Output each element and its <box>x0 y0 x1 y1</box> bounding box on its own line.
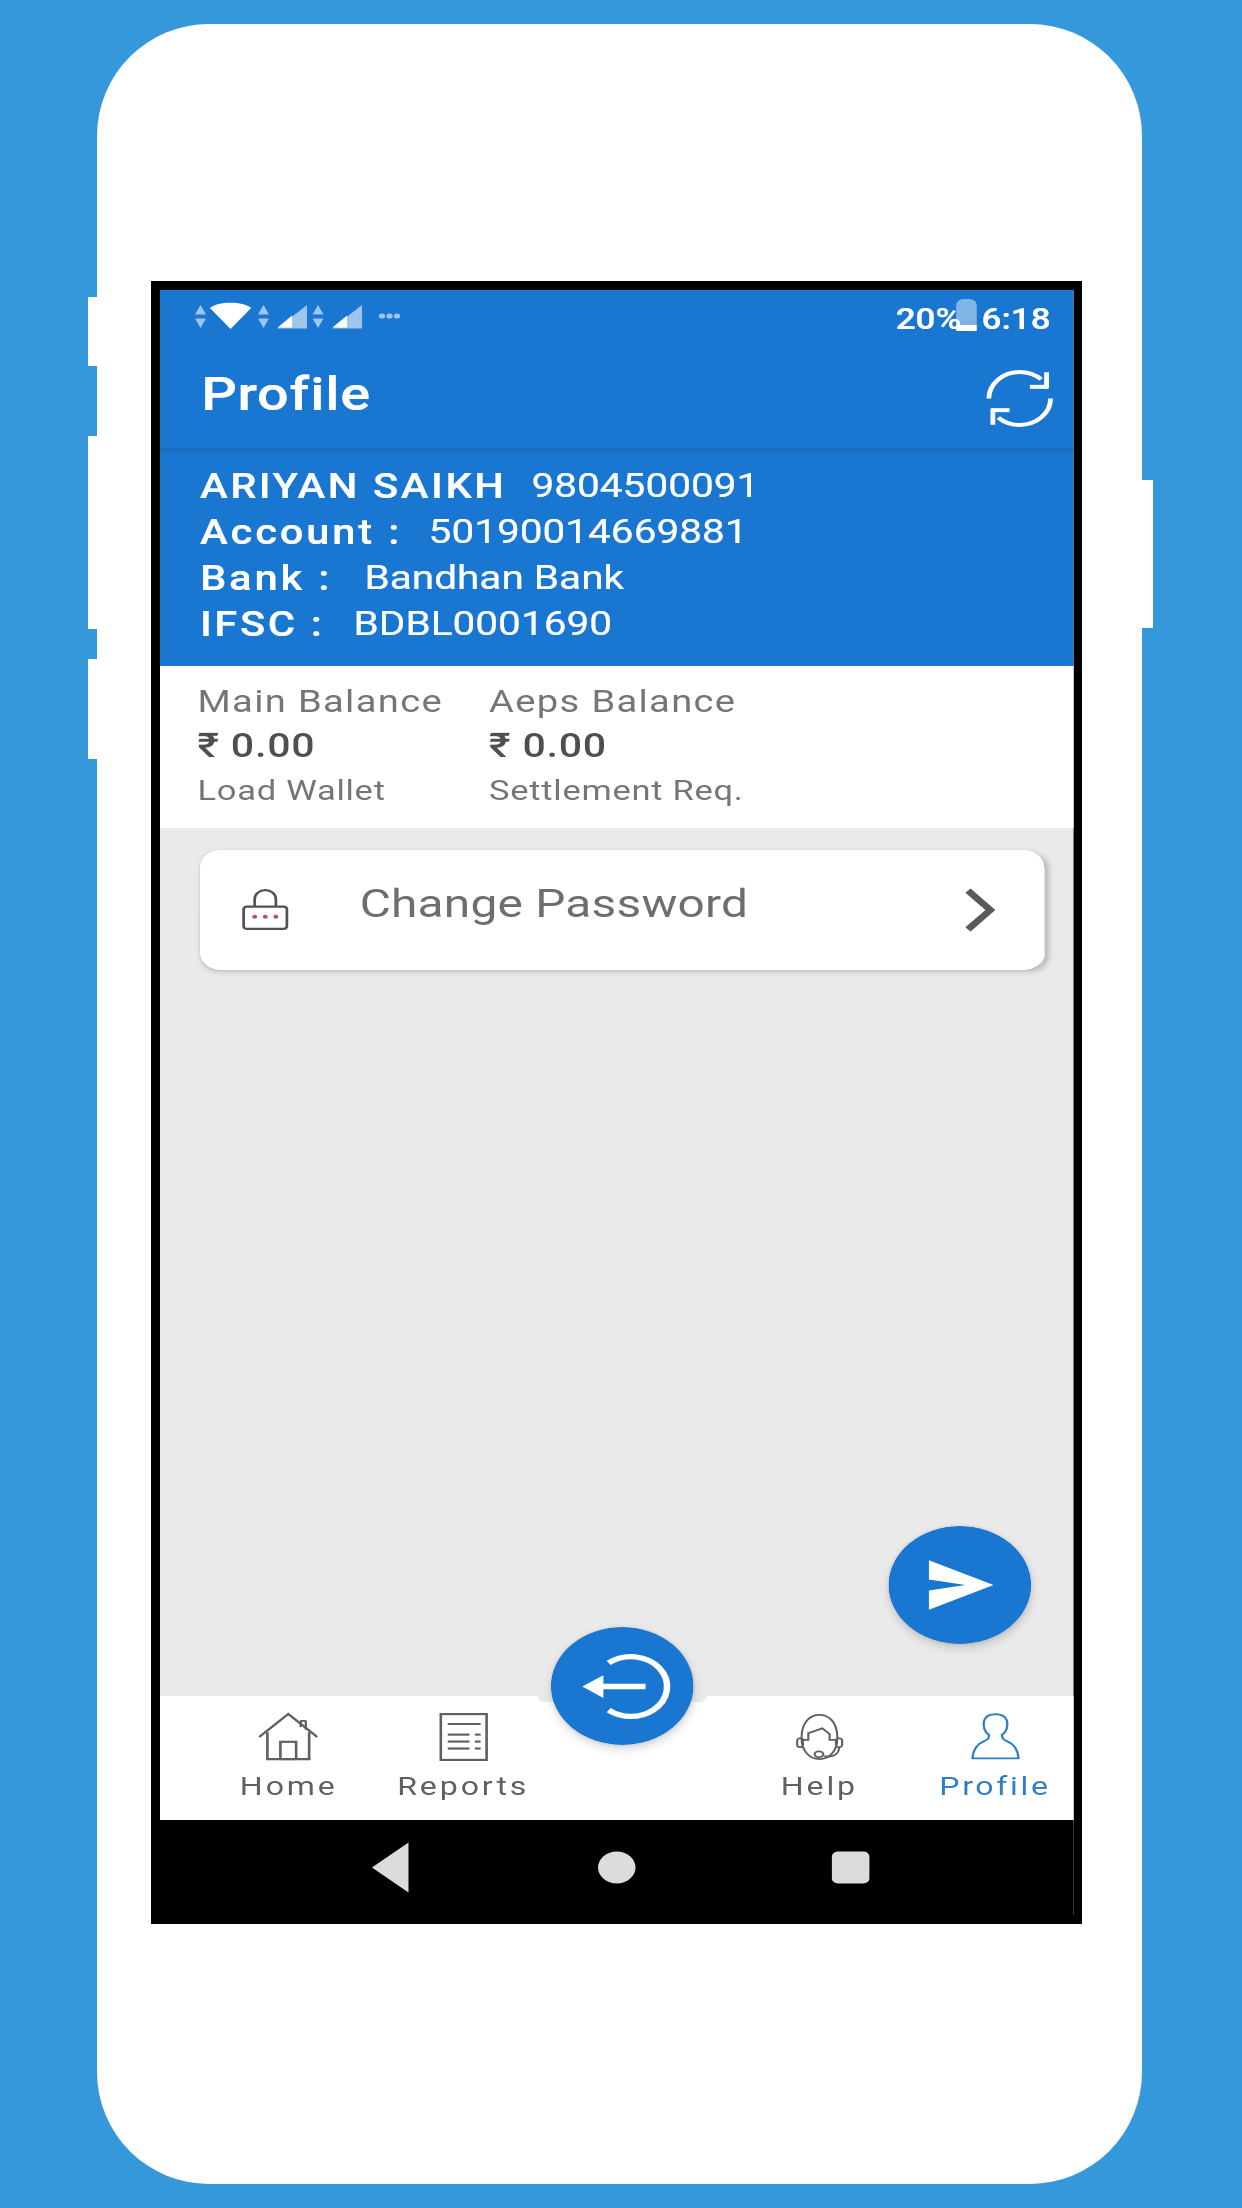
staticText: 50190014669881 <box>429 512 748 551</box>
staticText: Help <box>781 1770 858 1801</box>
staticText: ARIYAN SAIKH <box>200 466 507 506</box>
staticText: Account : <box>200 512 403 552</box>
staticText: 20% <box>896 302 962 336</box>
staticText: Bank : <box>200 558 333 598</box>
staticText: Aeps Balance <box>489 683 737 720</box>
button[interactable]: Send <box>888 1526 1031 1644</box>
staticText: Change Password <box>360 880 749 926</box>
staticText: IFSC : <box>200 604 326 644</box>
button[interactable]: Reports <box>379 1696 548 1820</box>
button[interactable]: Change Password <box>200 850 1044 970</box>
staticText: BDBL0001690 <box>354 604 612 643</box>
button[interactable]: Help <box>735 1696 904 1820</box>
staticText: Main Balance <box>197 683 443 720</box>
button[interactable]: Profile <box>910 1696 1080 1820</box>
button[interactable]: Logout <box>551 1627 694 1745</box>
staticText: ₹ 0.00 <box>489 725 608 765</box>
staticText: 6:18 <box>982 302 1052 336</box>
staticText: ₹ 0.00 <box>197 725 316 765</box>
staticText: 9804500091 <box>531 466 760 505</box>
button[interactable]: Home <box>204 1696 373 1820</box>
staticText: Profile <box>201 367 372 421</box>
staticText: Load Wallet <box>197 774 386 807</box>
staticText: Profile <box>939 1770 1052 1801</box>
staticText: Reports <box>397 1770 530 1801</box>
staticText: Settlement Req. <box>489 774 744 807</box>
staticText: Home <box>240 1770 338 1801</box>
staticText: Bandhan Bank <box>364 558 625 597</box>
button[interactable]: Refresh <box>972 359 1066 437</box>
